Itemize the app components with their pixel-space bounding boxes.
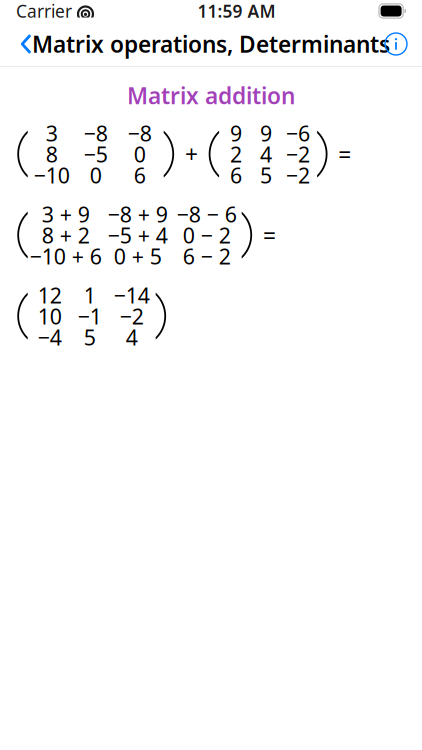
staticText: Matrix operations, Determinants <box>32 29 390 59</box>
staticText: −4 <box>38 323 62 351</box>
staticText: 2 <box>230 140 242 168</box>
staticText: 3 + 9 <box>42 200 90 228</box>
staticText: −10 + 6 <box>30 242 102 270</box>
staticText: 4 <box>260 140 272 168</box>
staticText: 1 <box>84 281 96 309</box>
staticText: 9 <box>230 119 242 147</box>
staticText: 6 − 2 <box>183 242 231 270</box>
staticText: −5 + 4 <box>108 221 168 249</box>
staticText: −8 − 6 <box>177 200 237 228</box>
staticText: 0 + 5 <box>114 242 162 270</box>
staticText: 11:59 AM <box>197 0 275 22</box>
staticText: Matrix addition <box>127 80 295 111</box>
staticText: −6 <box>286 119 310 147</box>
staticText: 12 <box>38 281 62 309</box>
staticText: = <box>338 139 351 169</box>
button[interactable]: Information <box>374 22 418 66</box>
staticText: 5 <box>84 323 96 351</box>
staticText: + <box>185 139 198 169</box>
staticText: Carrier <box>16 0 72 22</box>
staticText: 8 + 2 <box>42 221 90 249</box>
staticText: 6 <box>134 161 146 189</box>
staticText: −2 <box>120 302 144 330</box>
staticText: 0 <box>90 161 102 189</box>
staticText: 0 <box>134 140 146 168</box>
staticText: −2 <box>286 161 310 189</box>
staticText: 0 − 2 <box>183 221 231 249</box>
button[interactable]: Back <box>4 22 48 66</box>
staticText: 6 <box>230 161 242 189</box>
staticText: 3 <box>46 119 58 147</box>
staticText: 9 <box>260 119 272 147</box>
staticText: −1 <box>78 302 102 330</box>
staticText: = <box>263 220 276 250</box>
staticText: 5 <box>260 161 272 189</box>
staticText: 4 <box>126 323 138 351</box>
staticText: −8 + 9 <box>108 200 168 228</box>
staticText: −10 <box>34 161 70 189</box>
staticText: −2 <box>286 140 310 168</box>
staticText: −8 <box>128 119 152 147</box>
staticText: −5 <box>84 140 108 168</box>
staticText: 8 <box>46 140 58 168</box>
staticText: −8 <box>84 119 108 147</box>
staticText: 10 <box>38 302 62 330</box>
staticText: −14 <box>114 281 150 309</box>
